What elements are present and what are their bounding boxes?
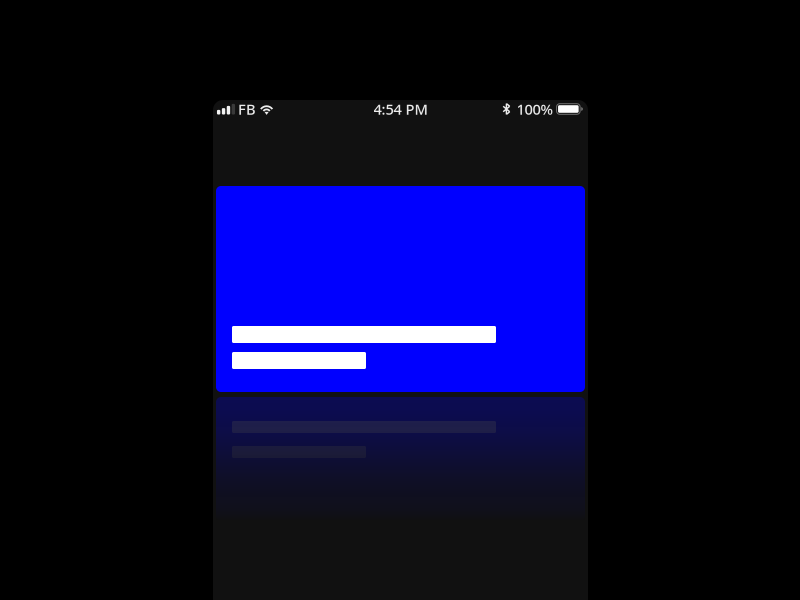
staticText: FB xyxy=(238,99,256,119)
staticText: 4:54 PM xyxy=(373,99,427,119)
staticText: 100% xyxy=(516,99,552,119)
button[interactable]: Featured item, loading xyxy=(216,186,585,392)
